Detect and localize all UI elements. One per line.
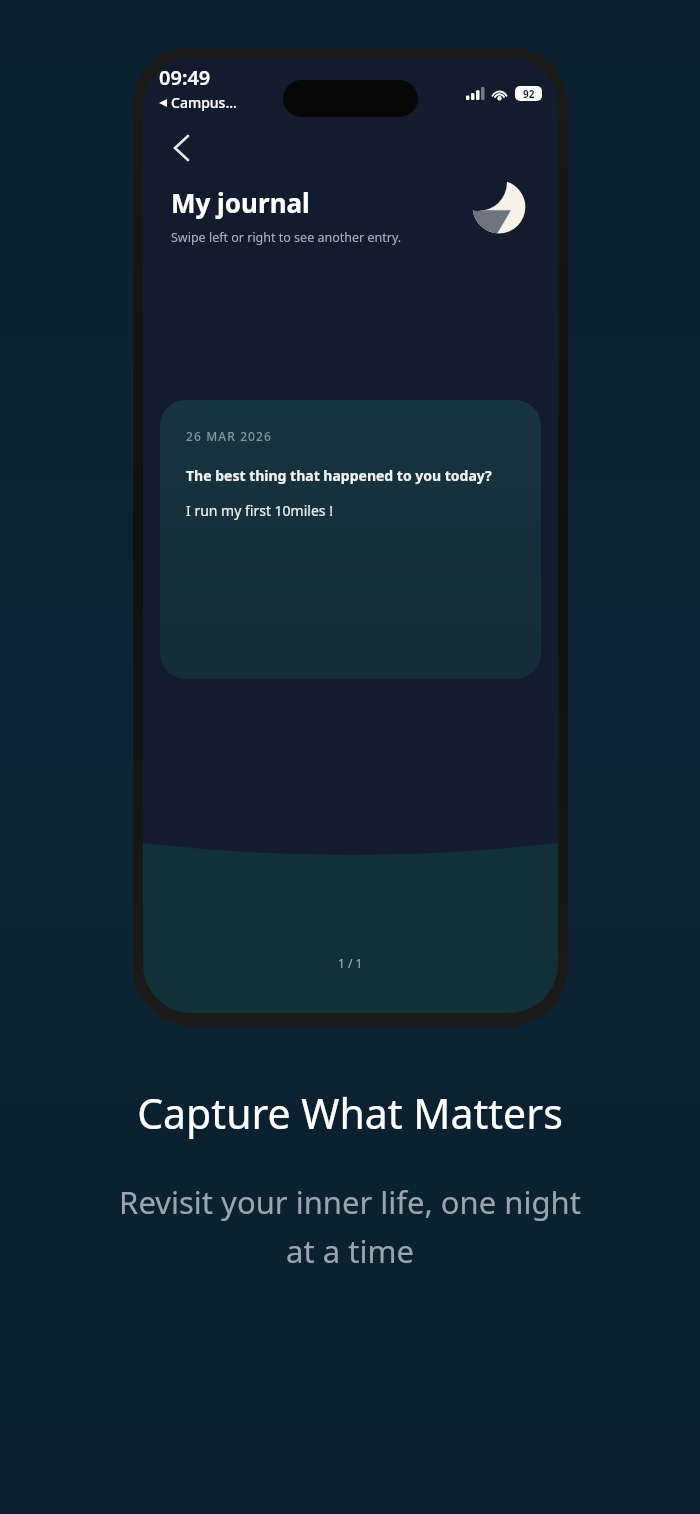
staticText: I run my first 10miles !: [186, 501, 333, 520]
staticText: My journal: [171, 185, 310, 220]
button[interactable]: Back: [161, 128, 201, 168]
staticText: The best thing that happened to you toda…: [186, 466, 492, 485]
staticText: 26 MAR 2026: [186, 428, 272, 444]
staticText: Swipe left or right to see another entry…: [171, 229, 402, 246]
staticText: 1 / 1: [338, 955, 363, 971]
staticText: Capture What Matters: [137, 1085, 563, 1141]
staticText: Revisit your inner life, one night at a …: [119, 1181, 581, 1273]
staticText: 09:49: [159, 64, 211, 91]
staticText: 92: [523, 87, 535, 101]
staticText: Campus...: [171, 93, 237, 112]
button[interactable]: 26 MAR 2026: [160, 400, 541, 679]
